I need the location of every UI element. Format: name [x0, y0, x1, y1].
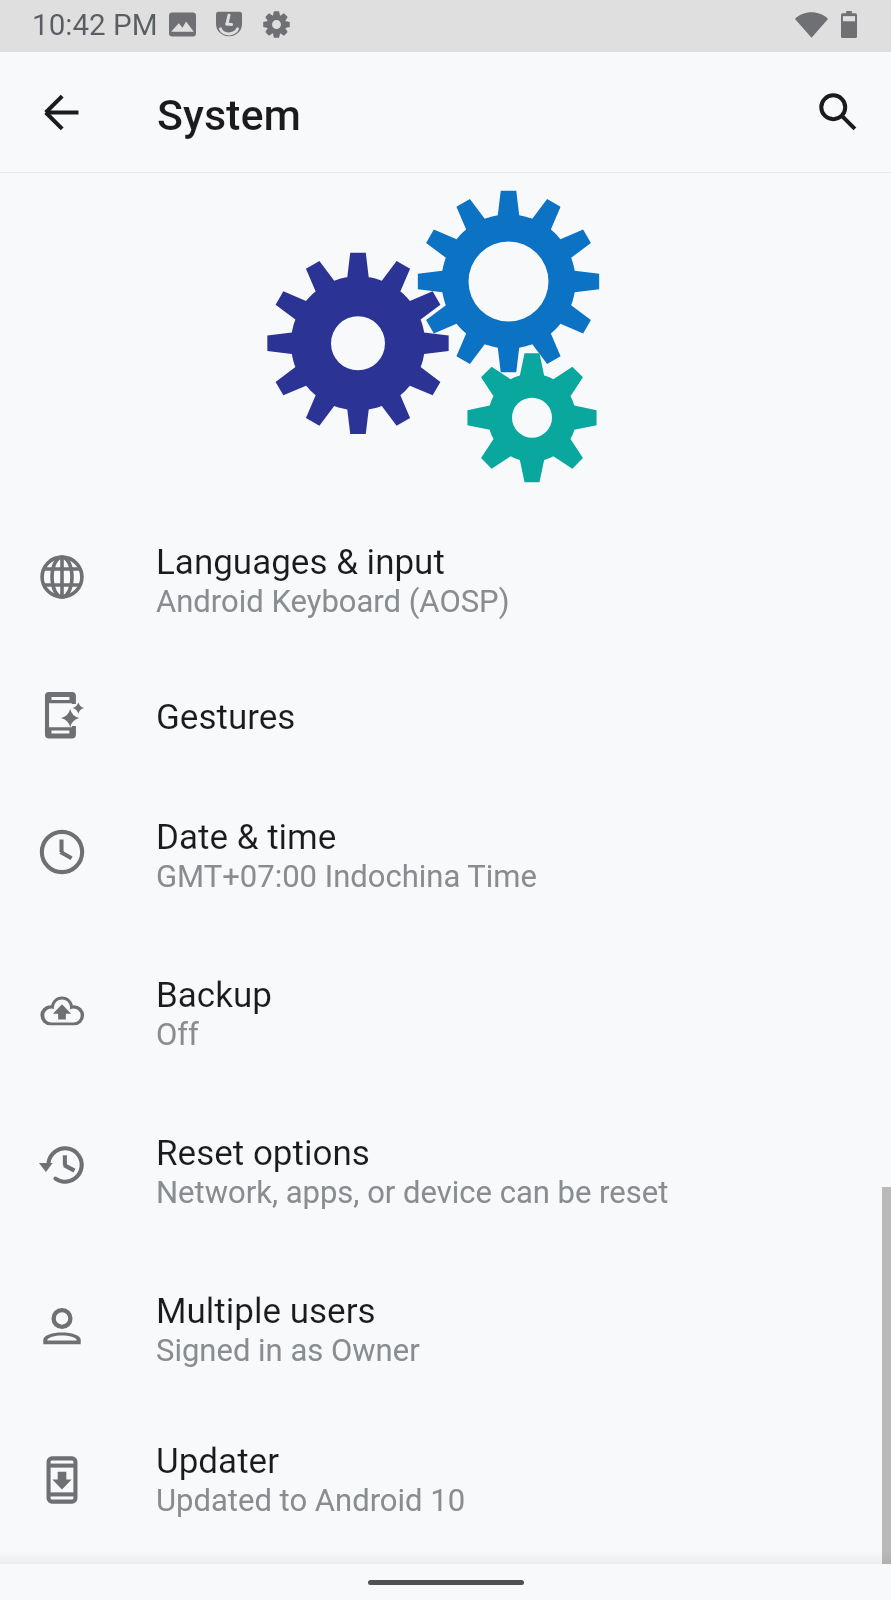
staticText: Multiple users	[156, 1291, 376, 1332]
staticText: 10:42 PM	[32, 8, 158, 43]
staticText: Reset options	[156, 1133, 370, 1174]
staticText: System	[157, 90, 301, 140]
staticText: Gestures	[156, 697, 296, 738]
button[interactable]: Backup	[0, 934, 891, 1092]
staticText: GMT+07:00 Indochina Time	[156, 858, 537, 894]
button[interactable]: Reset options	[0, 1092, 891, 1250]
staticText: Off	[156, 1016, 199, 1052]
button[interactable]: Languages & input	[0, 501, 891, 659]
button[interactable]: Back	[0, 52, 122, 172]
button[interactable]: Gestures	[0, 659, 891, 776]
staticText: Updater	[156, 1441, 279, 1482]
staticText: Date & time	[156, 817, 337, 858]
button[interactable]: Multiple users	[0, 1250, 891, 1408]
button[interactable]: Date & time	[0, 776, 891, 934]
staticText: Signed in as Owner	[156, 1332, 420, 1368]
staticText: Backup	[156, 975, 272, 1016]
staticText: Updated to Android 10	[156, 1482, 466, 1518]
button[interactable]: Updater	[0, 1408, 891, 1550]
button[interactable]: Search	[784, 52, 891, 172]
staticText: Android Keyboard (AOSP)	[156, 583, 510, 619]
staticText: Network, apps, or device can be reset	[156, 1174, 669, 1210]
staticText: Languages & input	[156, 542, 445, 583]
